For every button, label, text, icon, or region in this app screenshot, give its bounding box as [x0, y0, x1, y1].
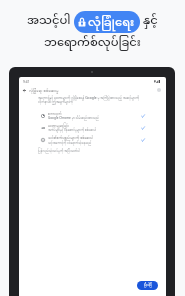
button[interactable]: စကားဝှက် [19, 110, 166, 122]
staticText: လုံခြုံရေး စစ်ဆေးမှု [29, 87, 59, 94]
staticText: ဒေတာမျှဝေခြင်း [48, 123, 69, 128]
staticText: စကားဝှက် [48, 111, 62, 116]
button[interactable]: ဒေတာမျှဝေခြင်း [19, 122, 166, 134]
button[interactable]: Account [156, 87, 162, 93]
staticText: အသင့်ပါ [27, 9, 71, 34]
staticText: သင်၏စက်ပစ္စည်းများကို စစ်ဆေးပါ [48, 135, 94, 141]
staticText: အက်ပ်များနှင့် ဝန်ဆောင်မှုများကို စစ်ဆေး… [48, 128, 96, 133]
staticText: လုံခြုံရေး [88, 11, 135, 33]
button[interactable]: ပြီးပါပြီ [137, 281, 158, 290]
staticText: အကောင့်နှင့် ဒေတာများကို လုံခြုံစေရန် Go… [38, 95, 148, 105]
staticText: နှင့် [143, 9, 158, 34]
button[interactable]: Back [21, 87, 27, 93]
staticText: ဘရောက်စ်လုပ်ခြင်း [44, 31, 141, 56]
staticText: ပြန်လည်သုံးသပ်မှုကို အပြီးသတ်ပါ [38, 148, 80, 153]
staticText: သင့်အကောင့်ကို ဝင်ရောက်သုံးနေသည် [48, 141, 92, 146]
staticText: 9:41 [23, 80, 30, 84]
staticText: Google Chrome မှာ သိမ်းဆည်းထားသည် [48, 116, 99, 121]
button[interactable]: သင်၏စက်ပစ္စည်းများကို စစ်ဆေးပါ [19, 134, 166, 146]
button[interactable]: လုံခြုံရေး [74, 11, 140, 33]
staticText: ပြီးပါပြီ [144, 283, 152, 288]
